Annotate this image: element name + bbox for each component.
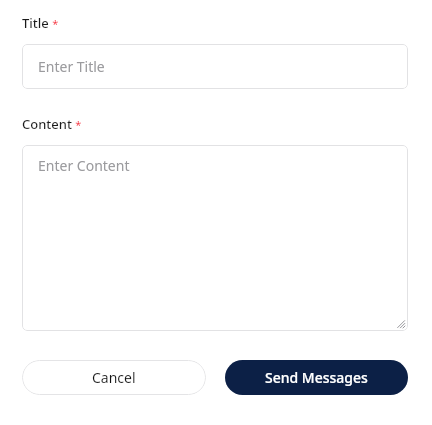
button[interactable]: Enter Content [22,145,408,331]
button[interactable]: Cancel [22,360,206,395]
button[interactable]: Enter Title [22,44,408,89]
staticText: Send Messages [265,368,368,387]
staticText: Enter Title [38,57,105,76]
button[interactable]: Send Messages [225,360,408,395]
staticText: Content * [22,115,82,133]
staticText: Cancel [92,368,136,387]
staticText: Title * [22,14,59,32]
staticText: Enter Content [38,156,130,175]
